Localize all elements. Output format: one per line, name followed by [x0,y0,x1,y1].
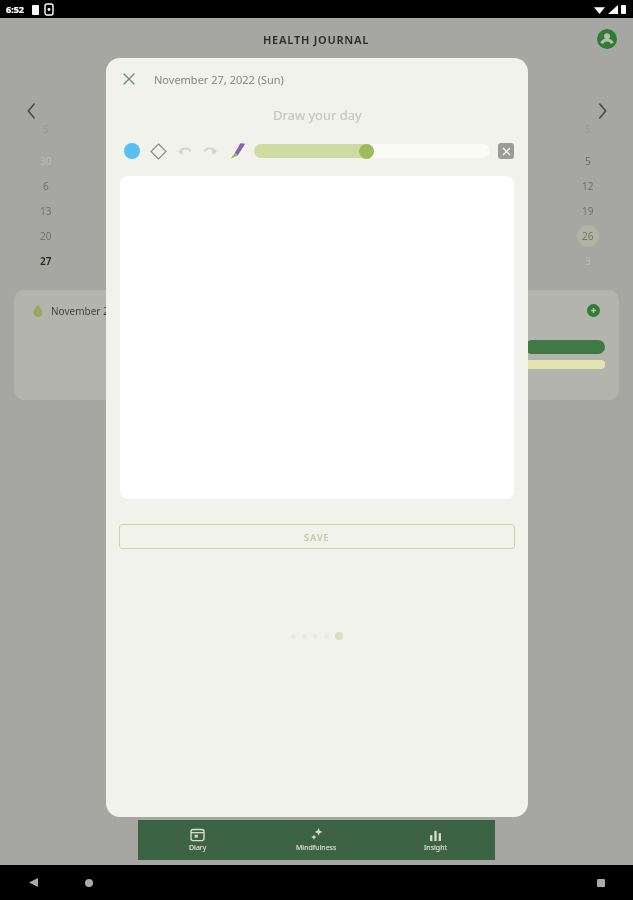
button[interactable]: Redo [198,139,222,163]
staticText: 12 [582,179,594,193]
staticText: 27 [40,254,52,268]
staticText: 5 [585,154,591,168]
button[interactable]: Insight [376,820,495,860]
button[interactable] [302,634,307,639]
button[interactable]: Color [120,139,144,163]
button[interactable] [313,634,318,639]
staticText: November 27, 2022 (Sun) [51,304,170,318]
staticText: 6 [43,179,49,193]
button[interactable]: Clear canvas [498,143,514,159]
button[interactable]: Add entry [585,302,601,318]
staticText: Diary [189,843,207,853]
staticText: 3 [585,254,591,268]
staticText: 6:52 [6,3,24,15]
staticText: 31 [131,154,143,168]
staticText: Mindfulness [296,843,337,853]
button[interactable]: Account [595,27,619,51]
staticText: 19 [582,204,594,218]
staticText: S [43,122,49,136]
staticText: 2 [315,154,321,168]
button[interactable] [324,634,329,639]
staticText: 3 [405,154,411,168]
staticText: 20 [40,229,52,243]
button[interactable]: Mindfulness [257,820,376,860]
button[interactable]: Undo [172,139,196,163]
staticText: 4 [495,154,501,168]
button[interactable] [335,632,343,640]
button[interactable]: Eraser [146,139,170,163]
staticText: Draw your day [273,106,362,124]
staticText: 26 [582,229,594,243]
staticText: 30 [40,154,52,168]
staticText: November 27, 2022 (Sun) [154,72,284,87]
button[interactable]: Next month [591,100,613,122]
staticText: S [585,122,591,136]
button[interactable]: Marker [226,139,250,163]
staticText: Insight [424,843,448,853]
button[interactable] [254,141,490,161]
button[interactable]: Previous month [20,100,42,122]
button[interactable] [291,634,296,639]
staticText: 13 [40,204,52,218]
button[interactable]: November 27, 2022 (Sun) [14,290,619,400]
staticText: HEALTH JOURNAL [263,32,370,47]
button[interactable]: SAVE [119,524,515,549]
staticText: SAVE [304,531,330,543]
button[interactable]: Diary [138,820,257,860]
button[interactable]: Close [116,66,142,92]
